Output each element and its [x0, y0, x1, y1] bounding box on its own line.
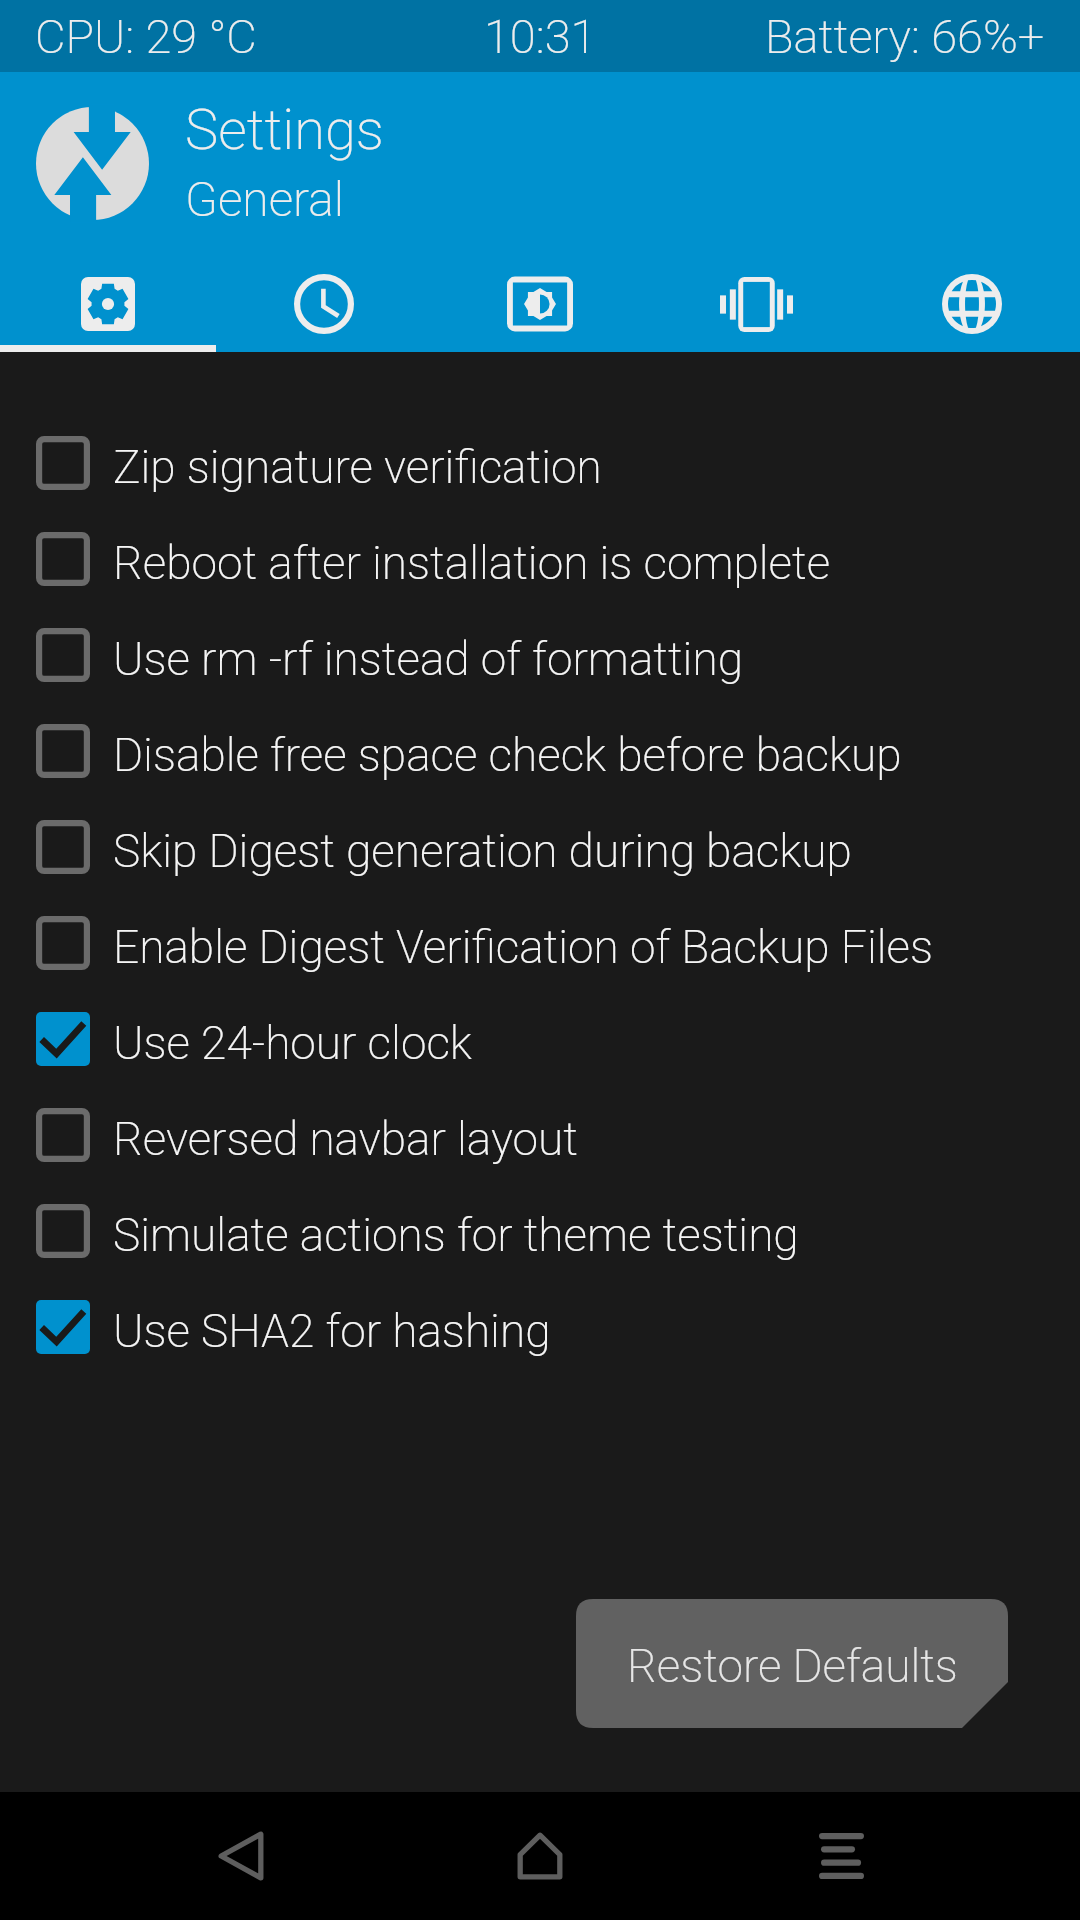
staticText: Settings	[185, 97, 384, 163]
button[interactable]: Home	[456, 1792, 624, 1920]
staticText: Enable Digest Verification of Backup Fil…	[113, 920, 934, 974]
staticText: Simulate actions for theme testing	[113, 1208, 799, 1262]
button[interactable]: Screen	[432, 254, 648, 354]
button[interactable]: Disable free space check before backup	[0, 703, 1080, 799]
staticText: Disable free space check before backup	[113, 728, 902, 782]
button[interactable]: Use rm -rf instead of formatting	[0, 607, 1080, 703]
button[interactable]: Vibration	[648, 254, 864, 354]
button[interactable]: Skip Digest generation during backup	[0, 799, 1080, 895]
button[interactable]: Enable Digest Verification of Backup Fil…	[0, 895, 1080, 991]
button[interactable]: Settings	[0, 254, 216, 354]
staticText: General	[185, 171, 344, 227]
button[interactable]: Reversed navbar layout	[0, 1087, 1080, 1183]
button[interactable]: Reboot after installation is complete	[0, 511, 1080, 607]
staticText: Use SHA2 for hashing	[113, 1304, 551, 1358]
staticText: Use rm -rf instead of formatting	[113, 632, 743, 686]
button[interactable]: Simulate actions for theme testing	[0, 1183, 1080, 1279]
staticText: Skip Digest generation during backup	[113, 824, 852, 878]
button[interactable]: Recent apps	[757, 1792, 925, 1920]
staticText: Reboot after installation is complete	[113, 536, 831, 590]
button[interactable]: Use 24-hour clock	[0, 991, 1080, 1087]
button[interactable]: Restore Defaults	[576, 1599, 1008, 1728]
staticText: Battery: 66%+	[765, 9, 1045, 64]
staticText: Zip signature verification	[113, 440, 602, 494]
button[interactable]: Language	[864, 254, 1080, 354]
staticText: Restore Defaults	[627, 1639, 958, 1693]
button[interactable]: Use SHA2 for hashing	[0, 1279, 1080, 1375]
button[interactable]: Zip signature verification	[0, 415, 1080, 511]
staticText: Use 24-hour clock	[113, 1016, 472, 1070]
staticText: 10:31	[484, 9, 597, 64]
button[interactable]: Time	[216, 254, 432, 354]
staticText: Reversed navbar layout	[113, 1112, 578, 1166]
staticText: CPU: 29 °C	[35, 9, 257, 64]
button[interactable]: Back	[157, 1792, 325, 1920]
